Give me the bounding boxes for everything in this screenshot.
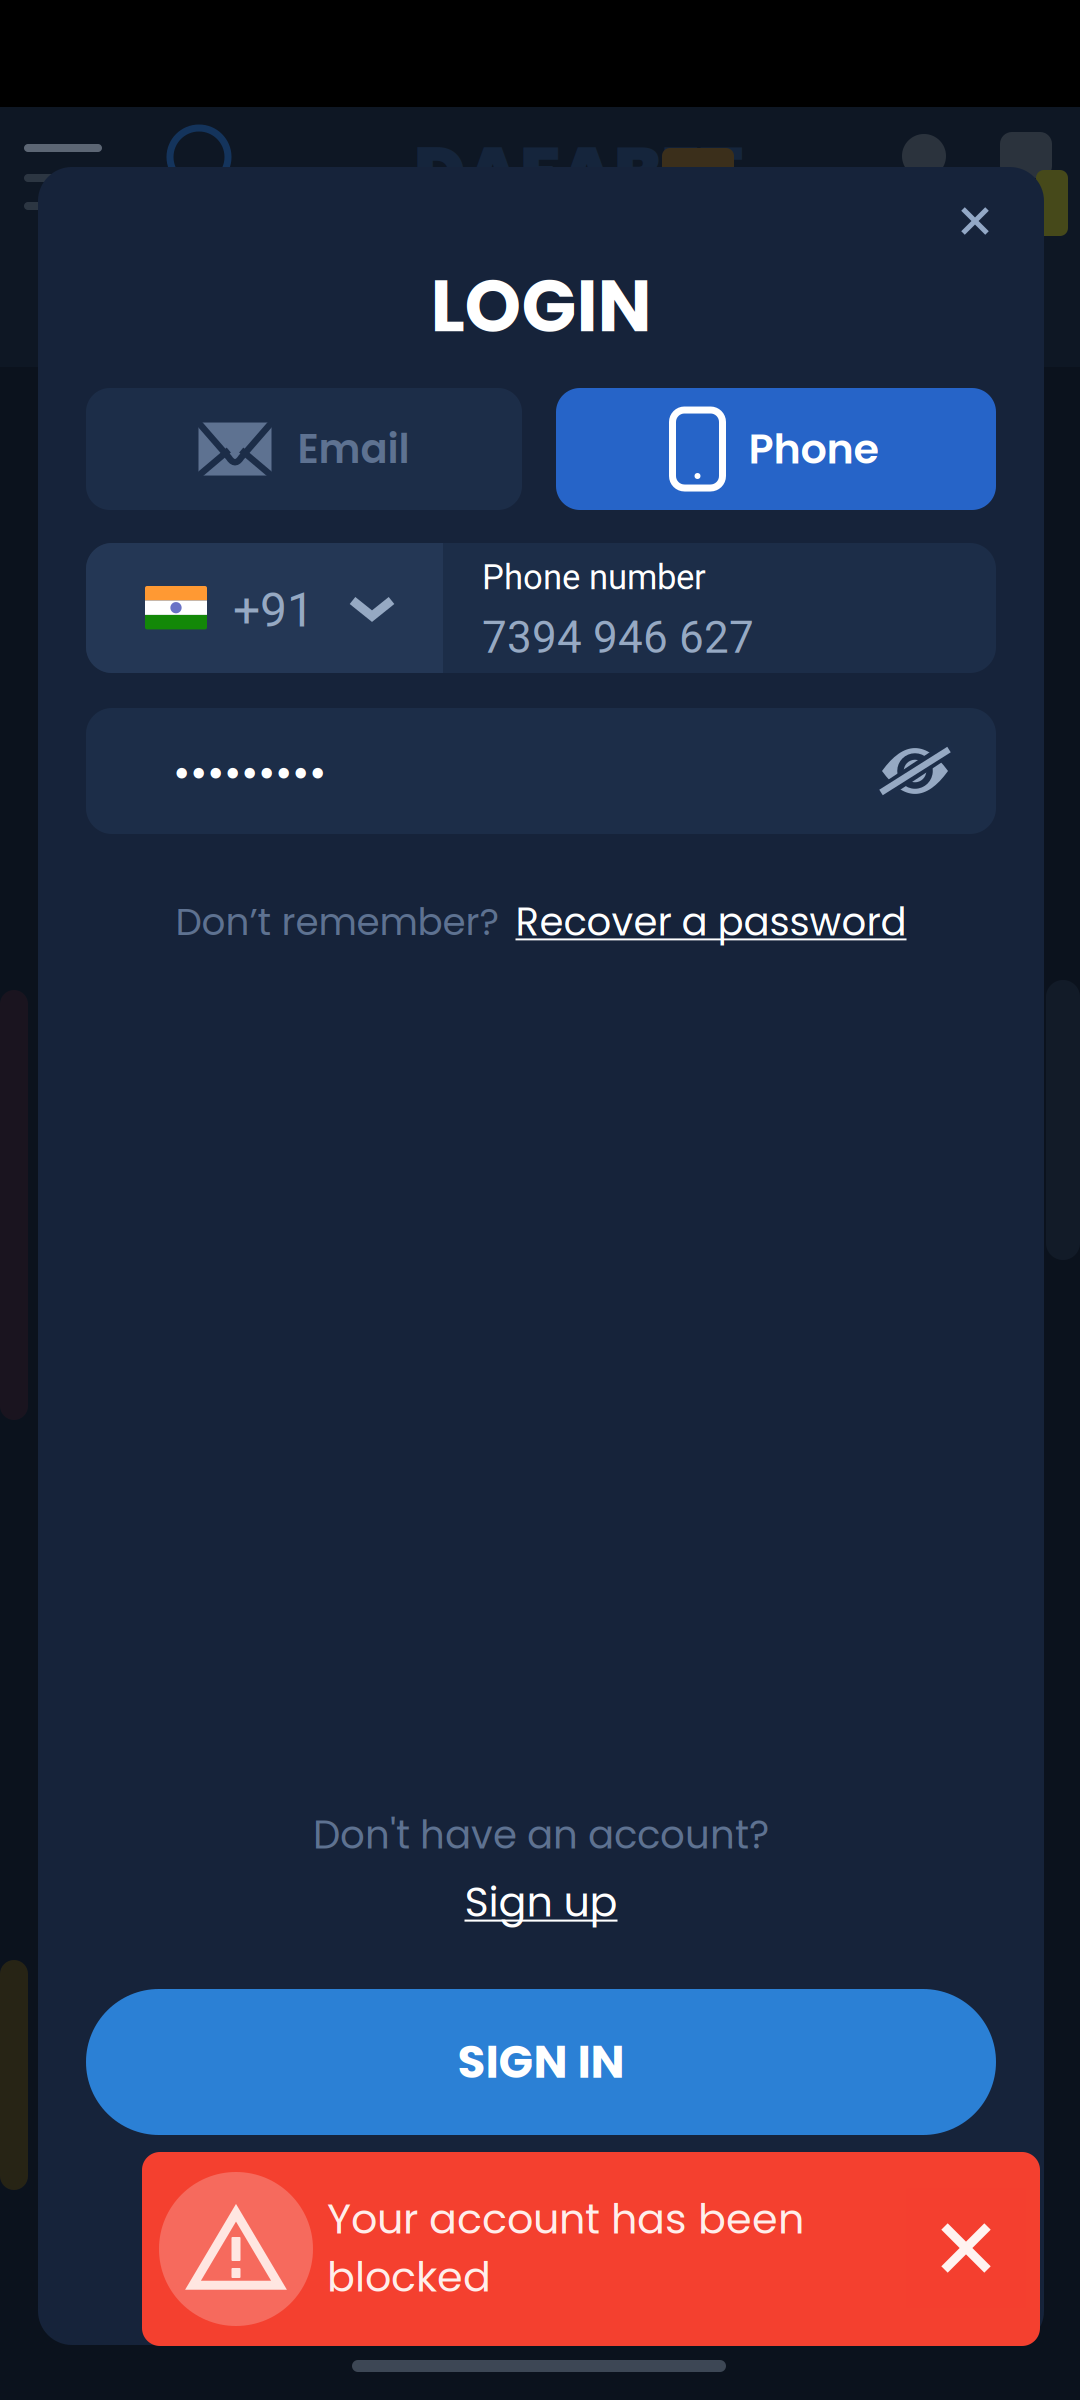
button[interactable]: Email [86,388,522,510]
staticText: Email [297,421,409,477]
button[interactable]: Don’t remember? [38,879,1044,965]
button[interactable]: SIGN IN [86,1989,996,2135]
staticText: Recover a password [515,895,906,949]
button[interactable]: Show password [850,708,980,834]
button[interactable]: Dismiss [906,2188,1026,2308]
button[interactable]: Sign up [391,1865,691,1939]
button[interactable]: +91 [86,543,443,673]
button[interactable]: Close [921,167,1029,275]
staticText: Your account has been blocked [327,2190,804,2306]
staticText: Don't have an account? [313,1808,769,1862]
staticText: Sign up [464,1873,617,1931]
staticText: ••••••••• [173,748,326,796]
staticText: +91 [233,582,314,638]
staticText: Phone number [482,557,706,598]
staticText: LOGIN [430,256,651,356]
staticText: Phone [748,420,879,478]
staticText: DAFABET [414,124,743,221]
staticText: SIGN IN [457,2030,624,2094]
staticText: 7394 946 627 [482,612,754,664]
button[interactable]: Phone [556,388,996,510]
staticText: Don’t remember? [175,896,499,948]
